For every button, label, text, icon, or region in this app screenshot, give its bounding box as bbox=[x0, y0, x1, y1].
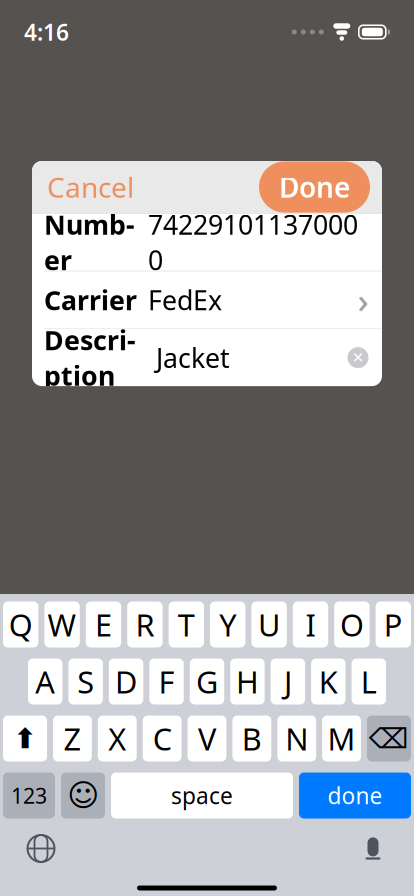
staticText: ✕ bbox=[352, 349, 364, 366]
staticText: U bbox=[258, 604, 280, 645]
staticText: space bbox=[171, 780, 233, 810]
staticText: Done bbox=[279, 168, 350, 206]
staticText: Y bbox=[219, 604, 236, 645]
staticText: W bbox=[48, 604, 77, 645]
button[interactable]: I bbox=[293, 601, 328, 647]
staticText: P bbox=[384, 604, 403, 645]
button[interactable]: T bbox=[169, 601, 204, 647]
button[interactable]: O bbox=[334, 601, 370, 647]
staticText: 742291011370000 bbox=[148, 207, 358, 278]
button[interactable]: space bbox=[111, 772, 293, 818]
staticText: Cancel bbox=[47, 168, 134, 206]
staticText: B bbox=[242, 718, 262, 759]
button[interactable]: X bbox=[98, 715, 137, 761]
staticText: ⌫ bbox=[369, 723, 409, 754]
button[interactable]: J bbox=[271, 658, 305, 704]
button[interactable]: E bbox=[86, 601, 121, 647]
button[interactable]: Clear text bbox=[346, 346, 370, 370]
staticText: T bbox=[178, 604, 195, 645]
staticText: A bbox=[35, 661, 55, 702]
staticText: H bbox=[236, 661, 259, 702]
staticText: Z bbox=[63, 718, 81, 759]
button[interactable]: Dictate bbox=[356, 831, 390, 865]
staticText: Q bbox=[9, 604, 33, 645]
button[interactable]: C bbox=[143, 715, 182, 761]
button[interactable]: S bbox=[68, 658, 103, 704]
button[interactable]: G bbox=[190, 658, 224, 704]
button[interactable]: Y bbox=[210, 601, 245, 647]
staticText: ⬆ bbox=[13, 723, 36, 754]
button[interactable]: Change keyboard bbox=[24, 831, 58, 865]
button[interactable]: M bbox=[322, 715, 361, 761]
button[interactable]: W bbox=[44, 601, 80, 647]
staticText: FedEx bbox=[148, 282, 222, 318]
staticText: C bbox=[153, 718, 172, 759]
staticText: Number bbox=[44, 207, 135, 278]
staticText: V bbox=[198, 718, 216, 759]
staticText: F bbox=[159, 661, 175, 702]
staticText: E bbox=[95, 604, 112, 645]
staticText: Jacket bbox=[156, 340, 230, 375]
staticText: I bbox=[305, 604, 315, 645]
button[interactable]: Shift bbox=[3, 715, 47, 761]
button[interactable]: 123 bbox=[3, 772, 55, 818]
button[interactable]: F bbox=[149, 658, 184, 704]
button[interactable]: Q bbox=[3, 601, 38, 647]
staticText: 4:16 bbox=[24, 17, 69, 47]
button[interactable]: Carrier bbox=[32, 271, 382, 328]
button[interactable]: Cancel bbox=[44, 159, 137, 215]
staticText: R bbox=[135, 604, 154, 645]
staticText: ☺ bbox=[67, 778, 99, 813]
button[interactable]: U bbox=[251, 601, 287, 647]
staticText: D bbox=[115, 661, 137, 702]
button[interactable]: P bbox=[376, 601, 411, 647]
button[interactable]: done bbox=[299, 772, 411, 818]
button[interactable]: H bbox=[230, 658, 265, 704]
staticText: 123 bbox=[11, 781, 47, 810]
button[interactable]: K bbox=[311, 658, 345, 704]
staticText: S bbox=[77, 661, 94, 702]
staticText: N bbox=[285, 718, 308, 759]
button[interactable]: B bbox=[232, 715, 271, 761]
button[interactable]: V bbox=[188, 715, 226, 761]
staticText: X bbox=[108, 718, 126, 759]
button[interactable]: Emoji bbox=[61, 772, 105, 818]
staticText: O bbox=[340, 604, 364, 645]
staticText: K bbox=[319, 661, 338, 702]
button[interactable]: Delete bbox=[367, 715, 411, 761]
staticText: G bbox=[196, 661, 218, 702]
staticText: Carrier bbox=[44, 282, 137, 318]
button[interactable]: D bbox=[109, 658, 143, 704]
button[interactable]: Z bbox=[53, 715, 92, 761]
staticText: J bbox=[284, 661, 292, 702]
staticText: Description bbox=[44, 322, 136, 393]
staticText: done bbox=[327, 780, 382, 810]
staticText: L bbox=[361, 661, 377, 702]
button[interactable]: Done bbox=[259, 161, 370, 213]
button[interactable]: L bbox=[352, 658, 386, 704]
staticText: M bbox=[328, 718, 356, 759]
button[interactable]: N bbox=[277, 715, 316, 761]
button[interactable]: R bbox=[127, 601, 163, 647]
staticText: › bbox=[357, 277, 368, 323]
button[interactable]: A bbox=[28, 658, 62, 704]
